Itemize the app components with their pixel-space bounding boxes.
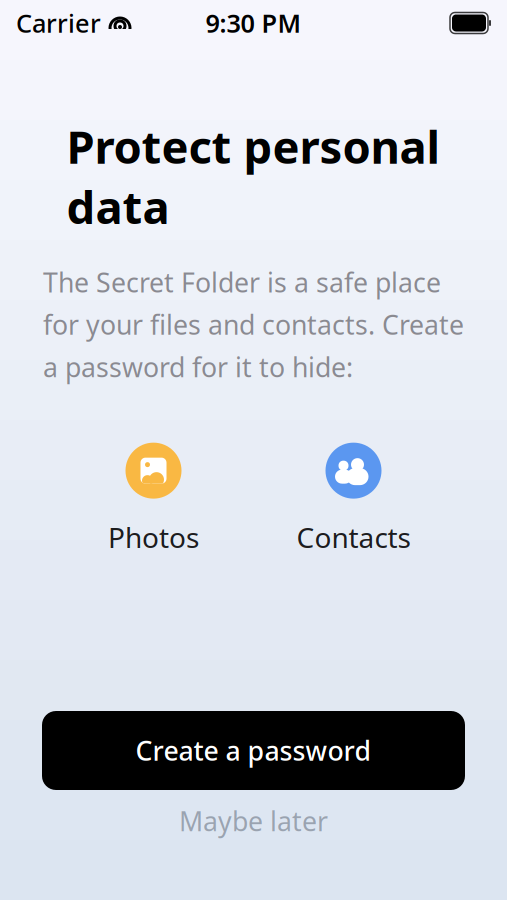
staticText: Maybe later <box>179 803 328 839</box>
staticText: Protect personal data <box>66 116 440 236</box>
staticText: Photos <box>108 519 199 556</box>
staticText: The Secret Folder is a safe place for yo… <box>43 264 464 385</box>
staticText: Create a password <box>135 733 371 768</box>
button[interactable]: Create a password <box>42 711 465 790</box>
staticText: 9:30 PM <box>205 6 301 40</box>
staticText: Contacts <box>296 519 410 556</box>
staticText: Carrier <box>16 6 101 40</box>
button[interactable]: Maybe later <box>42 794 465 848</box>
